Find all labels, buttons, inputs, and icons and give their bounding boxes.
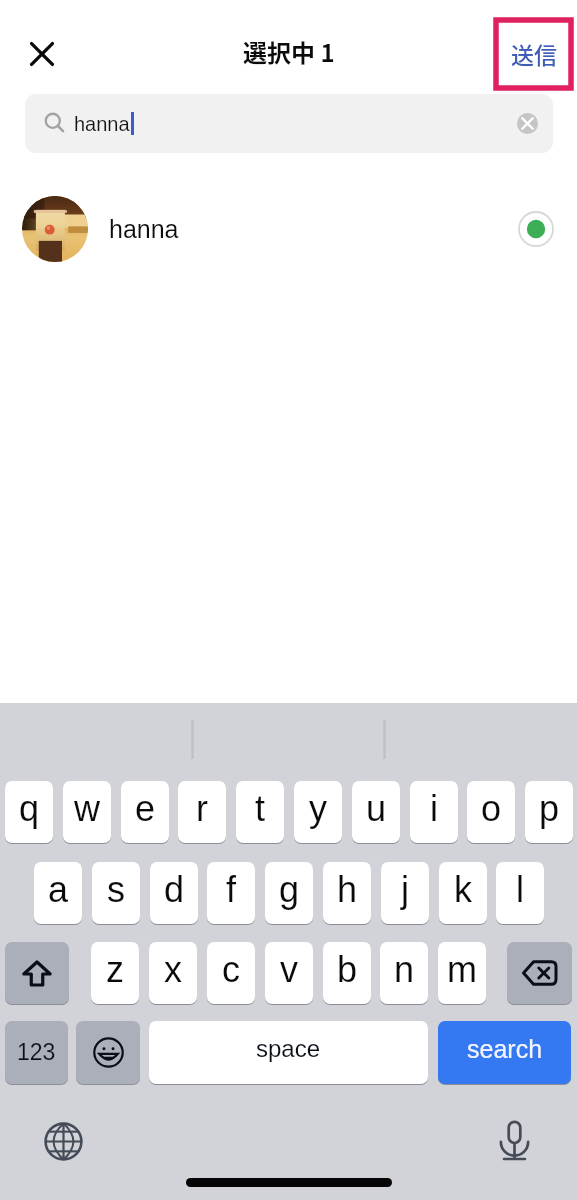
button[interactable]: 送信 (496, 20, 571, 88)
button[interactable]: space (149, 1021, 428, 1084)
staticText: f (226, 869, 237, 909)
staticText: k (454, 869, 472, 909)
staticText: hanna (109, 215, 179, 243)
staticText: space (256, 1035, 321, 1062)
staticText: t (255, 788, 266, 828)
staticText: c (222, 949, 240, 989)
button[interactable]: x (149, 942, 197, 1004)
button[interactable]: j (381, 862, 429, 924)
staticText: u (366, 788, 387, 828)
staticText: hanna (74, 113, 130, 135)
button[interactable]: search (438, 1021, 571, 1084)
staticText: l (516, 869, 524, 909)
staticText: 送信 (511, 37, 557, 70)
button[interactable]: m (438, 942, 486, 1004)
staticText: z (106, 949, 124, 989)
button[interactable]: k (439, 862, 487, 924)
button[interactable]: 123 (5, 1021, 68, 1084)
button[interactable]: d (150, 862, 198, 924)
button[interactable]: e (121, 781, 169, 843)
button[interactable]: u (352, 781, 400, 843)
button[interactable]: h (323, 862, 371, 924)
button[interactable]: y (294, 781, 342, 843)
button[interactable]: r (178, 781, 226, 843)
button[interactable]: Change keyboard (39, 1117, 87, 1165)
staticText: w (74, 788, 100, 828)
staticText: a (48, 869, 69, 909)
button[interactable]: Shift (5, 942, 69, 1004)
staticText: search (467, 1035, 543, 1063)
staticText: n (394, 949, 415, 989)
button[interactable]: n (380, 942, 428, 1004)
button[interactable]: Backspace (507, 942, 572, 1004)
button[interactable]: b (323, 942, 371, 1004)
staticText: h (337, 869, 358, 909)
button[interactable]: Close (18, 30, 65, 77)
staticText: 123 (17, 1039, 56, 1065)
button[interactable]: o (467, 781, 515, 843)
button[interactable]: q (5, 781, 53, 843)
button[interactable]: z (91, 942, 139, 1004)
button[interactable]: t (236, 781, 284, 843)
button[interactable]: g (265, 862, 313, 924)
staticText: p (539, 788, 560, 828)
staticText: v (280, 949, 298, 989)
button[interactable]: hanna (25, 94, 553, 153)
button[interactable]: w (63, 781, 111, 843)
staticText: s (107, 869, 125, 909)
staticText: b (337, 949, 358, 989)
staticText: m (447, 949, 477, 989)
staticText: i (430, 788, 438, 828)
button[interactable]: Emoji (76, 1021, 140, 1084)
staticText: j (401, 869, 409, 909)
staticText: y (309, 788, 327, 828)
button[interactable]: c (207, 942, 255, 1004)
button[interactable]: Voice input (490, 1117, 538, 1165)
staticText: e (135, 788, 156, 828)
button[interactable]: f (207, 862, 255, 924)
staticText: d (164, 869, 185, 909)
button[interactable]: a (34, 862, 82, 924)
button[interactable]: hanna (0, 186, 577, 272)
staticText: o (481, 788, 502, 828)
button[interactable]: Clear text (511, 107, 544, 140)
staticText: q (19, 788, 40, 828)
button[interactable]: v (265, 942, 313, 1004)
staticText: g (279, 869, 300, 909)
button[interactable]: i (410, 781, 458, 843)
staticText: r (196, 788, 208, 828)
staticText: x (164, 949, 182, 989)
button[interactable]: s (92, 862, 140, 924)
staticText: 選択中 1 (243, 34, 335, 69)
button[interactable]: p (525, 781, 573, 843)
button[interactable]: l (496, 862, 544, 924)
